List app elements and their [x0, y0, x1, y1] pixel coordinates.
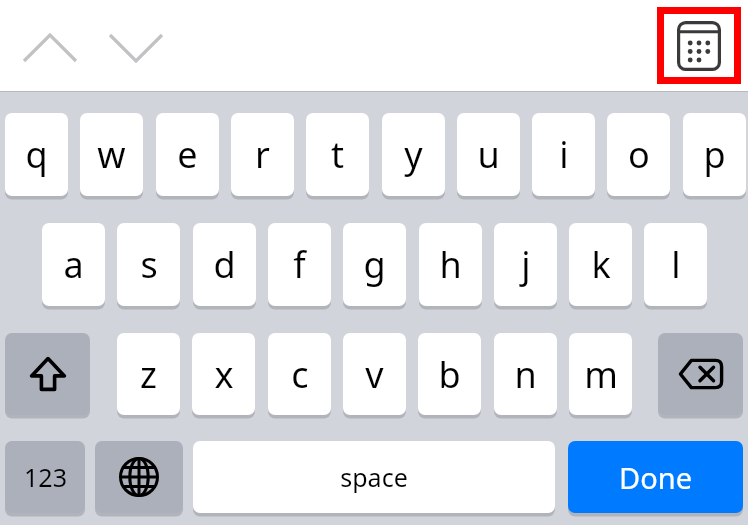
button[interactable]: Next field	[108, 20, 164, 76]
button[interactable]: v	[343, 333, 406, 415]
staticText: m	[584, 350, 618, 399]
button[interactable]: p	[683, 113, 746, 196]
button[interactable]: o	[607, 113, 670, 196]
staticText: y	[404, 130, 423, 179]
button[interactable]: k	[569, 223, 632, 306]
button[interactable]: Delete	[658, 333, 743, 415]
staticText: x	[214, 350, 234, 399]
button[interactable]: n	[494, 333, 557, 415]
button[interactable]: t	[306, 113, 369, 196]
button[interactable]: l	[644, 223, 707, 306]
staticText: z	[140, 350, 157, 399]
staticText: l	[671, 240, 681, 289]
button[interactable]: r	[231, 113, 294, 196]
staticText: w	[97, 130, 126, 179]
staticText: a	[63, 240, 84, 289]
staticText: 123	[24, 460, 67, 494]
button[interactable]: f	[268, 223, 331, 306]
staticText: n	[514, 350, 537, 399]
staticText: v	[365, 350, 384, 399]
staticText: g	[363, 240, 386, 289]
staticText: i	[559, 130, 569, 179]
button[interactable]: q	[5, 113, 68, 196]
staticText: p	[703, 130, 726, 179]
button[interactable]: a	[42, 223, 105, 306]
button[interactable]: d	[193, 223, 256, 306]
button[interactable]: b	[418, 333, 481, 415]
staticText: j	[521, 240, 531, 289]
staticText: k	[591, 240, 611, 289]
staticText: Done	[619, 458, 692, 497]
button[interactable]: i	[532, 113, 595, 196]
button[interactable]: u	[457, 113, 520, 196]
button[interactable]: m	[569, 333, 632, 415]
button[interactable]: x	[192, 333, 255, 415]
staticText: t	[331, 130, 344, 179]
button[interactable]: y	[382, 113, 445, 196]
staticText: c	[291, 350, 309, 399]
button[interactable]: g	[343, 223, 406, 306]
staticText: b	[438, 350, 461, 399]
staticText: r	[255, 130, 270, 179]
button[interactable]: j	[494, 223, 557, 306]
staticText: q	[25, 130, 48, 179]
staticText: d	[213, 240, 236, 289]
button[interactable]: space	[193, 441, 555, 513]
button[interactable]: Keypad	[664, 14, 734, 77]
button[interactable]: Done	[568, 441, 743, 513]
button[interactable]: z	[117, 333, 180, 415]
staticText: space	[340, 460, 408, 494]
staticText: u	[477, 130, 500, 179]
staticText: h	[439, 240, 462, 289]
button[interactable]: c	[268, 333, 331, 415]
staticText: o	[628, 130, 650, 179]
button[interactable]: w	[80, 113, 143, 196]
staticText: f	[293, 240, 306, 289]
staticText: s	[140, 240, 158, 289]
button[interactable]: h	[419, 223, 482, 306]
button[interactable]: 123	[5, 441, 85, 513]
button[interactable]: Shift	[5, 333, 90, 415]
staticText: e	[177, 130, 198, 179]
button[interactable]: Switch keyboard language	[95, 441, 183, 513]
button[interactable]: s	[117, 223, 180, 306]
button[interactable]: e	[156, 113, 219, 196]
button[interactable]: Previous field	[22, 20, 78, 76]
